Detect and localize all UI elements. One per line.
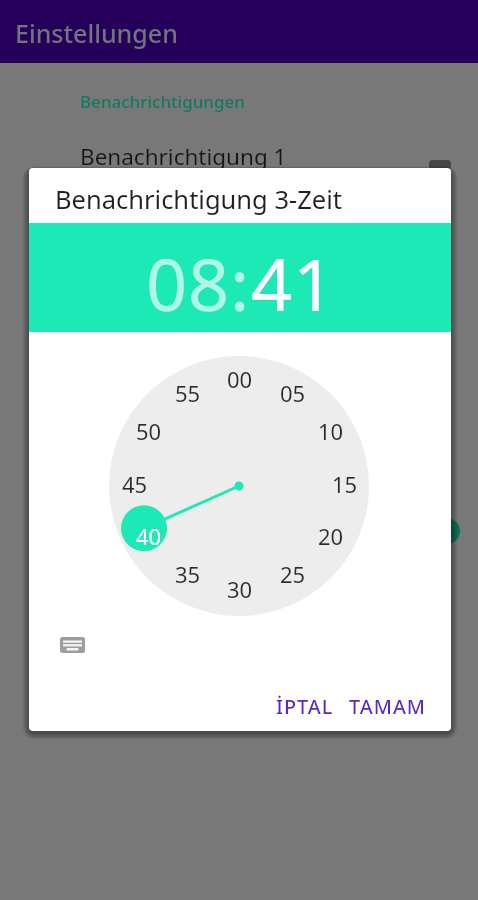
staticText: Benachrichtigung 3-Zeit <box>55 182 342 217</box>
staticText: 35 <box>175 559 201 589</box>
staticText: 50 <box>136 416 162 446</box>
button[interactable]: 41 <box>251 234 335 332</box>
staticText: TAMAM <box>349 693 427 720</box>
staticText: 30 <box>227 574 253 604</box>
button[interactable] <box>52 629 92 661</box>
staticText: 45 <box>122 469 148 499</box>
staticText: 15 <box>332 469 358 499</box>
staticText: 55 <box>175 378 201 408</box>
button[interactable]: 08 <box>146 234 230 332</box>
button[interactable]: TAMAM <box>341 686 435 726</box>
staticText: : <box>230 234 251 332</box>
staticText: 10 <box>318 416 344 446</box>
staticText: 05 <box>280 378 306 408</box>
button[interactable]: İPTAL <box>265 686 345 726</box>
staticText: Einstellungen <box>15 16 178 50</box>
staticText: İPTAL <box>276 693 334 720</box>
staticText: 40 <box>136 521 162 551</box>
staticText: Benachrichtigung 1 <box>80 141 287 172</box>
staticText: 00 <box>227 364 253 394</box>
staticText: 25 <box>280 559 306 589</box>
staticText: 20 <box>318 521 344 551</box>
staticText: Benachrichtigungen <box>80 90 245 113</box>
